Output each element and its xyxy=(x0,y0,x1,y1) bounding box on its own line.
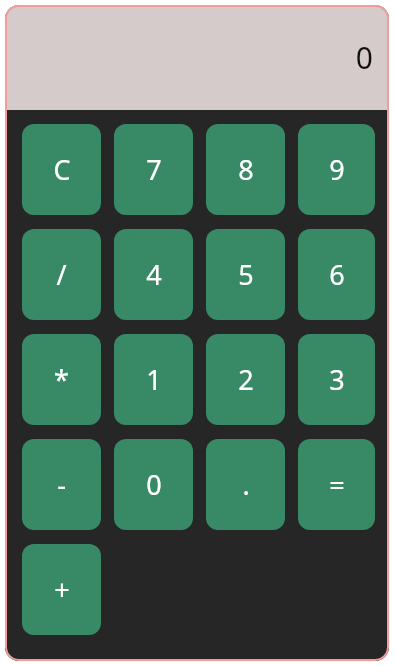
staticText: - xyxy=(57,466,66,503)
staticText: C xyxy=(53,151,71,188)
staticText: 3 xyxy=(329,361,345,398)
staticText: 2 xyxy=(238,361,254,398)
button[interactable]: 4 xyxy=(114,229,193,320)
staticText: 7 xyxy=(146,151,162,188)
button[interactable]: Multiply xyxy=(22,334,101,425)
staticText: 0 xyxy=(355,37,373,78)
staticText: 6 xyxy=(329,256,345,293)
staticText: = xyxy=(329,466,345,503)
staticText: + xyxy=(54,571,70,608)
staticText: 5 xyxy=(238,256,254,293)
button[interactable]: Add xyxy=(22,544,101,635)
staticText: 9 xyxy=(329,151,345,188)
staticText: 1 xyxy=(146,361,162,398)
staticText: * xyxy=(54,361,69,398)
staticText: 4 xyxy=(146,256,162,293)
staticText: 8 xyxy=(238,151,254,188)
button[interactable]: 9 xyxy=(298,124,375,215)
button[interactable]: Divide xyxy=(22,229,101,320)
button[interactable]: 2 xyxy=(206,334,285,425)
button[interactable]: 3 xyxy=(298,334,375,425)
staticText: . xyxy=(242,466,250,503)
button[interactable]: Subtract xyxy=(22,439,101,530)
staticText: 0 xyxy=(146,466,162,503)
button[interactable]: Decimal point xyxy=(206,439,285,530)
button[interactable]: 8 xyxy=(206,124,285,215)
staticText: / xyxy=(56,256,67,293)
button[interactable]: 7 xyxy=(114,124,193,215)
button[interactable]: 0 xyxy=(114,439,193,530)
button[interactable]: 1 xyxy=(114,334,193,425)
button[interactable]: 6 xyxy=(298,229,375,320)
button[interactable]: Clear xyxy=(22,124,101,215)
button[interactable]: 5 xyxy=(206,229,285,320)
button[interactable]: Equals xyxy=(298,439,375,530)
